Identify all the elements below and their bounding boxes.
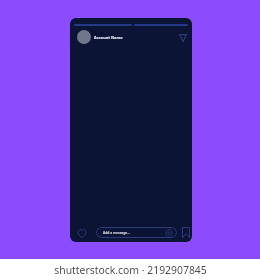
button[interactable]: Save [180, 226, 192, 238]
staticText: Account Name [94, 35, 123, 40]
staticText: Add a message... [103, 230, 130, 235]
button[interactable]: Like [75, 226, 88, 239]
button[interactable]: Add a message... [96, 227, 177, 238]
button[interactable]: Profile [77, 30, 91, 44]
button[interactable]: Send [176, 31, 189, 44]
staticText: shutterstock.com · 2192907845 [54, 263, 207, 277]
